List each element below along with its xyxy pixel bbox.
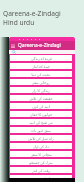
staticText: دل کی آواز: [33, 144, 49, 149]
staticText: راہ عمل کی تلاش: [28, 136, 54, 141]
staticText: جینے کے انداز: [32, 64, 50, 69]
other: Menu: [11, 44, 15, 48]
button[interactable]: زندگی کا راز: [10, 87, 72, 93]
button[interactable]: راہ عمل کی تلاش: [10, 135, 72, 141]
staticText: سچائی کا سفر: [31, 152, 52, 157]
button[interactable]: خوابوں کا جہان: [10, 111, 72, 117]
staticText: امید کی کرن: [32, 104, 50, 109]
button[interactable]: سچائی کا سفر: [10, 151, 72, 157]
staticText: علم کی روشنی: [30, 176, 52, 181]
button[interactable]: حقیقت کی تلاش: [10, 95, 72, 101]
staticText: حقیقت کی تلاش: [29, 96, 53, 101]
staticText: Qareena-e-Zindagi: [18, 42, 61, 49]
staticText: خوابوں کا جہان: [30, 112, 52, 117]
button[interactable]: سبق آموز بات: [10, 127, 72, 133]
staticText: روحانی سفر: [32, 80, 50, 85]
staticText: قرینہ اے زندگی: [31, 56, 52, 61]
staticText: سبق آموز بات: [31, 128, 51, 133]
button[interactable]: قرینہ اے زندگی: [10, 55, 72, 61]
staticText: منزل کی جستجو: [29, 160, 53, 165]
button[interactable]: محبت کی دنیا: [10, 71, 72, 77]
button[interactable]: Search: [9, 50, 75, 54]
button[interactable]: روحانی سفر: [10, 79, 72, 85]
staticText: وقت کی قدر: [32, 168, 50, 173]
staticText: محبت کی دنیا: [31, 72, 51, 77]
button[interactable]: نئی صبح کی امید: [10, 119, 72, 125]
button[interactable]: جینے کے انداز: [10, 63, 72, 69]
button[interactable]: وقت کی قدر: [10, 167, 72, 173]
staticText: زندگی کا راز: [32, 88, 50, 93]
button[interactable]: علم کی روشنی: [10, 175, 72, 181]
other: Search: [12, 50, 16, 54]
staticText: Qareena-e-Zindagi: [3, 9, 61, 18]
button[interactable]: دل کی آواز: [10, 143, 72, 149]
button[interactable]: امید کی کرن: [10, 103, 72, 109]
button[interactable]: منزل کی جستجو: [10, 159, 72, 165]
staticText: نئی صبح کی امید: [29, 120, 53, 125]
button[interactable]: Menu: [9, 41, 75, 50]
staticText: Hind urdu: [3, 18, 35, 27]
